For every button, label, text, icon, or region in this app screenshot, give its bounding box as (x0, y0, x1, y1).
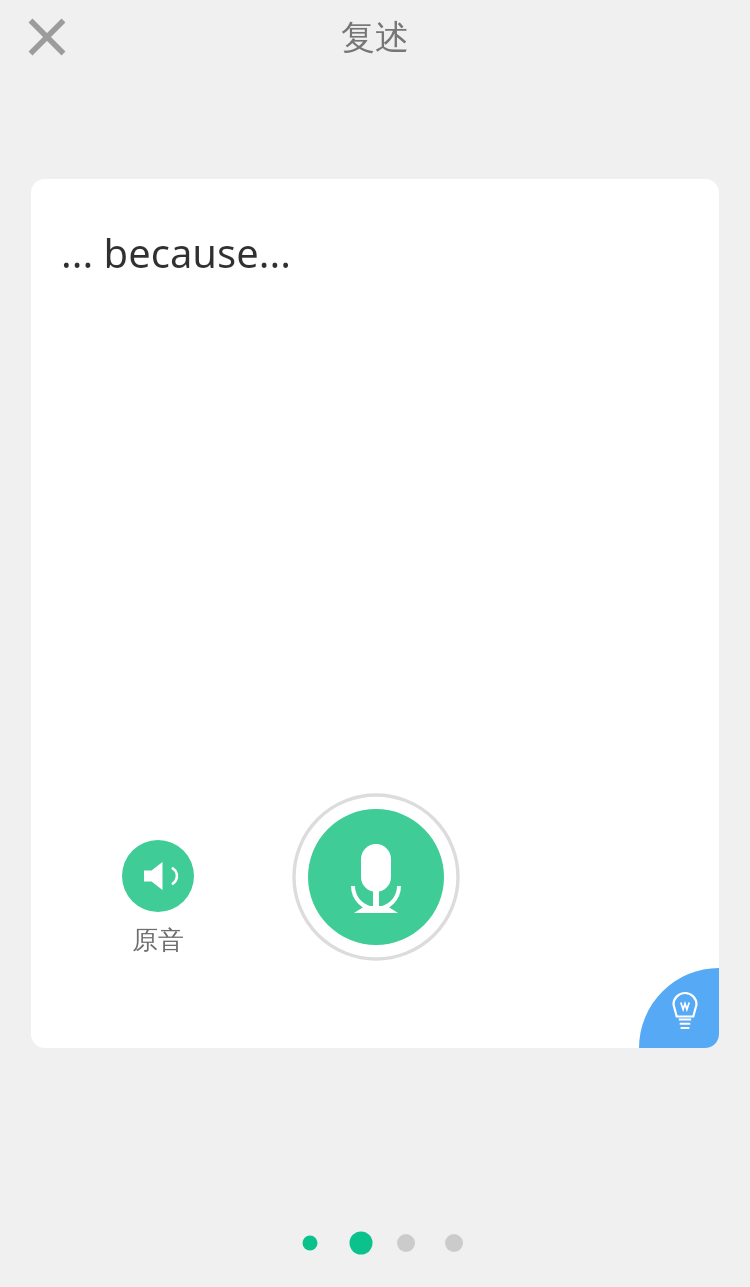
staticText: 复述 (341, 16, 409, 59)
staticText: 原音 (132, 924, 184, 957)
button[interactable]: Hint (639, 968, 719, 1048)
button[interactable]: Record (292, 793, 460, 961)
staticText: ... because... (61, 225, 291, 279)
button[interactable]: Close (14, 4, 80, 70)
button[interactable]: 原音 (122, 840, 194, 945)
